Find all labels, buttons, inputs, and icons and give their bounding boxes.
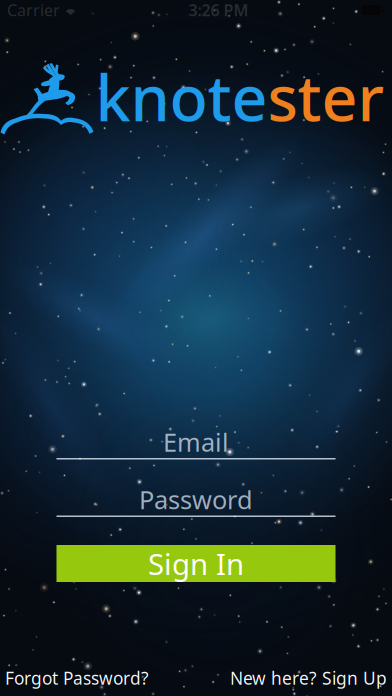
- staticText: 3:26 PM: [188, 0, 248, 21]
- staticText: knote: [95, 55, 267, 139]
- staticText: Email: [163, 425, 229, 459]
- button[interactable]: Forgot Password?: [3, 662, 151, 693]
- staticText: Sign In: [148, 544, 244, 583]
- button[interactable]: Sign In: [56, 545, 335, 582]
- button[interactable]: New here? Sign Up: [228, 662, 389, 693]
- staticText: ster: [267, 55, 384, 139]
- staticText: Forgot Password?: [5, 666, 149, 689]
- staticText: Password: [139, 483, 253, 516]
- staticText: Carrier: [7, 0, 60, 21]
- staticText: New here? Sign Up: [230, 666, 387, 689]
